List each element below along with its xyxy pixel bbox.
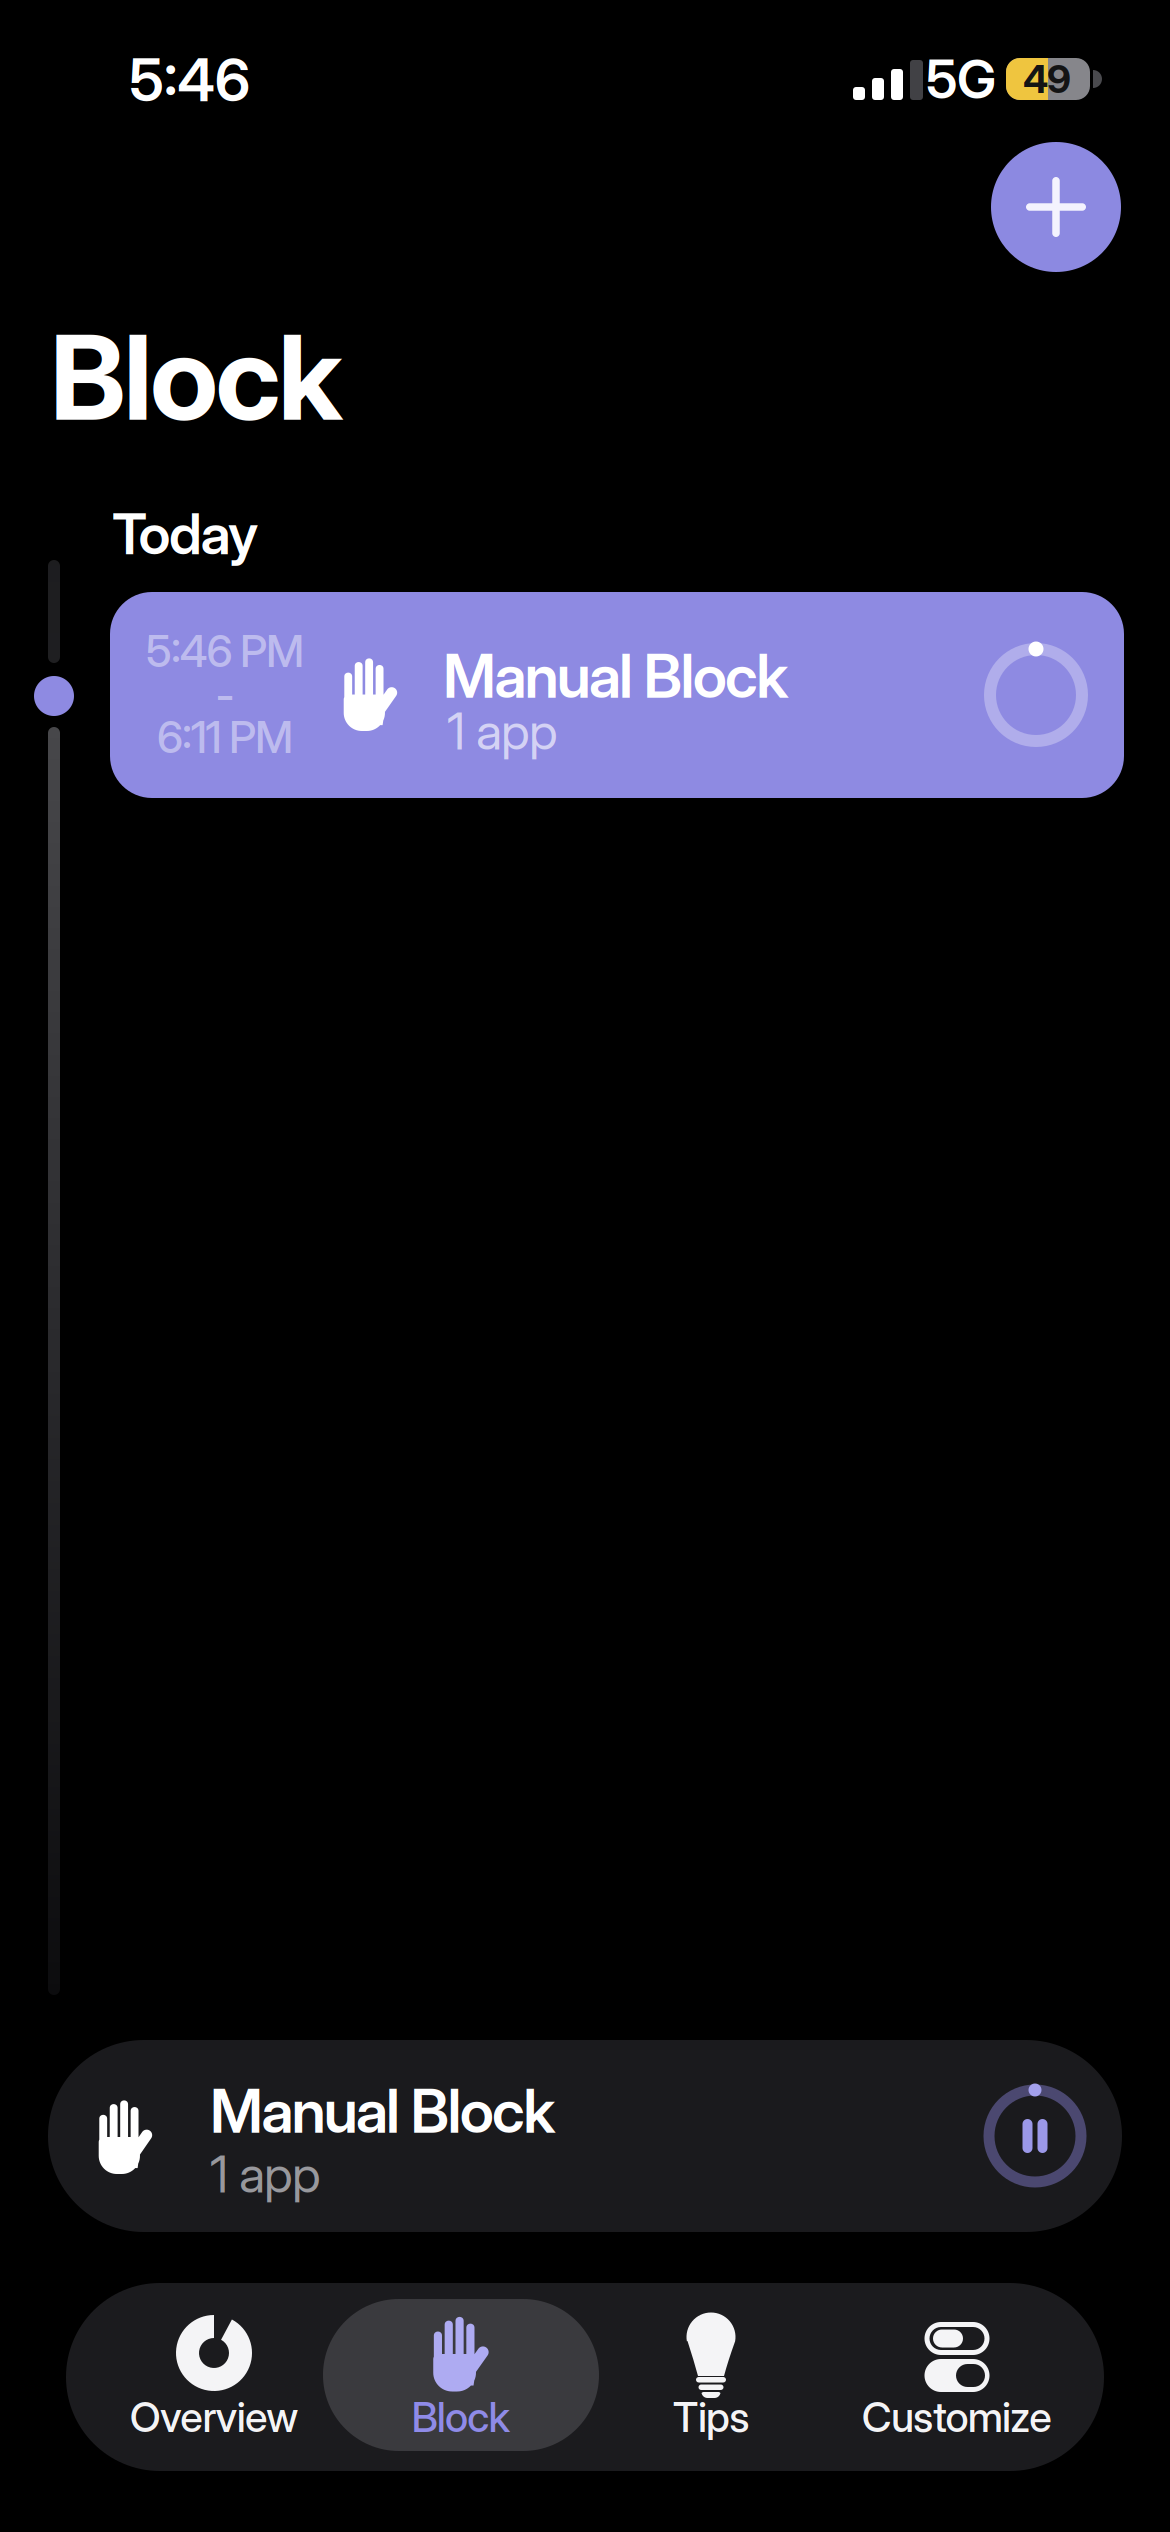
staticText: - xyxy=(215,669,234,721)
button[interactable]: Pause xyxy=(979,2080,1091,2192)
button[interactable]: Add block xyxy=(991,142,1121,272)
button[interactable]: Customize xyxy=(817,2289,1097,2465)
staticText: Overview xyxy=(130,2393,298,2441)
staticText: 5G xyxy=(926,47,996,110)
staticText: Block xyxy=(412,2393,510,2441)
button[interactable]: 5:46 PM xyxy=(110,592,1124,798)
staticText: Block xyxy=(50,308,343,446)
staticText: 1 app xyxy=(210,2144,321,2204)
staticText: 1 app xyxy=(447,701,558,761)
staticText: Customize xyxy=(862,2393,1052,2441)
button[interactable]: Block xyxy=(321,2289,601,2465)
staticText: Tips xyxy=(673,2393,749,2441)
staticText: 6:11 PM xyxy=(157,711,293,763)
staticText: 5:46 xyxy=(129,45,251,115)
staticText: Today xyxy=(112,501,258,567)
staticText: 5:46 PM xyxy=(146,625,304,677)
staticText: Manual Block xyxy=(210,2076,555,2146)
staticText: 49 xyxy=(1023,56,1071,102)
button[interactable]: Tips xyxy=(571,2289,851,2465)
staticText: Manual Block xyxy=(443,641,788,711)
button[interactable]: Manual Block xyxy=(48,2040,1122,2232)
button[interactable]: Overview xyxy=(74,2289,354,2465)
